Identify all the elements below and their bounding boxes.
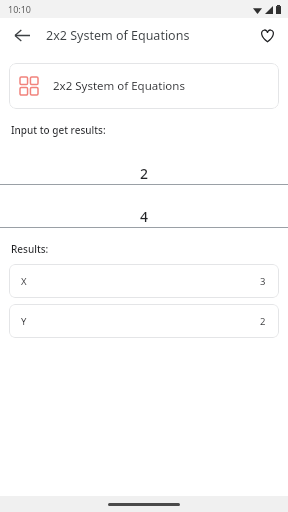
staticText: 10:10 [8,3,32,15]
staticText: 2x2 System of Equations [53,78,185,94]
staticText: X [21,275,27,288]
button[interactable]: 2 [0,154,288,194]
staticText: 2x2 System of Equations [46,27,190,44]
staticText: 4 [133,207,155,226]
button[interactable]: 2x2 System of Equations [9,63,279,109]
staticText: 2 [260,315,266,328]
button[interactable]: Back [8,21,36,49]
staticText: Input to get results: [11,123,106,137]
staticText: 2 [133,164,155,183]
button[interactable]: Y [9,304,279,338]
button[interactable]: Favorite [253,21,281,49]
button[interactable]: 4 [0,207,288,228]
staticText: Y [21,315,27,328]
staticText: Results: [11,242,49,256]
button[interactable]: X [9,264,279,298]
staticText: 3 [260,275,266,288]
